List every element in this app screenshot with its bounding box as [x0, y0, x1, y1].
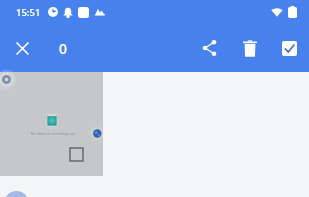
- button[interactable]: Select all: [269, 24, 309, 72]
- button[interactable]: Close: [0, 24, 45, 72]
- staticText: 0: [59, 39, 68, 58]
- button[interactable]: Add recording: [4, 191, 29, 197]
- staticText: 15:51: [16, 6, 41, 19]
- button[interactable]: Recording thumbnail: [0, 72, 103, 176]
- button[interactable]: Delete: [230, 24, 269, 72]
- button[interactable]: Record: [88, 124, 106, 142]
- staticText: No items in recordings yet: [23, 131, 83, 136]
- button[interactable]: Share: [189, 24, 230, 72]
